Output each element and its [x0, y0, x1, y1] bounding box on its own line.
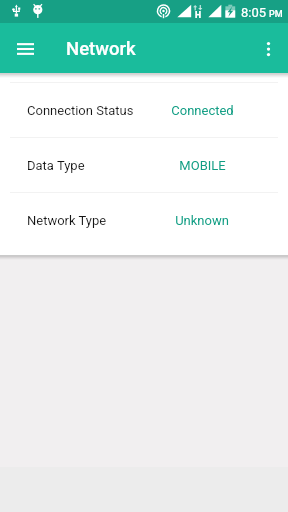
- staticText: Connection Status: [27, 103, 134, 118]
- button[interactable]: Network Type: [0, 193, 288, 247]
- staticText: Data Type: [27, 158, 85, 173]
- staticText: MOBILE: [179, 158, 226, 173]
- button[interactable]: Open navigation drawer: [10, 33, 41, 64]
- button[interactable]: Data Type: [0, 138, 288, 192]
- staticText: 8:05: [241, 5, 267, 20]
- staticText: Network: [66, 38, 136, 60]
- staticText: Unknown: [175, 213, 229, 228]
- staticText: Network Type: [27, 213, 107, 228]
- button[interactable]: More options: [252, 32, 284, 64]
- staticText: H: [195, 10, 202, 20]
- staticText: Connected: [171, 103, 234, 118]
- staticText: PM: [269, 9, 283, 20]
- button[interactable]: Connection Status: [0, 83, 288, 137]
